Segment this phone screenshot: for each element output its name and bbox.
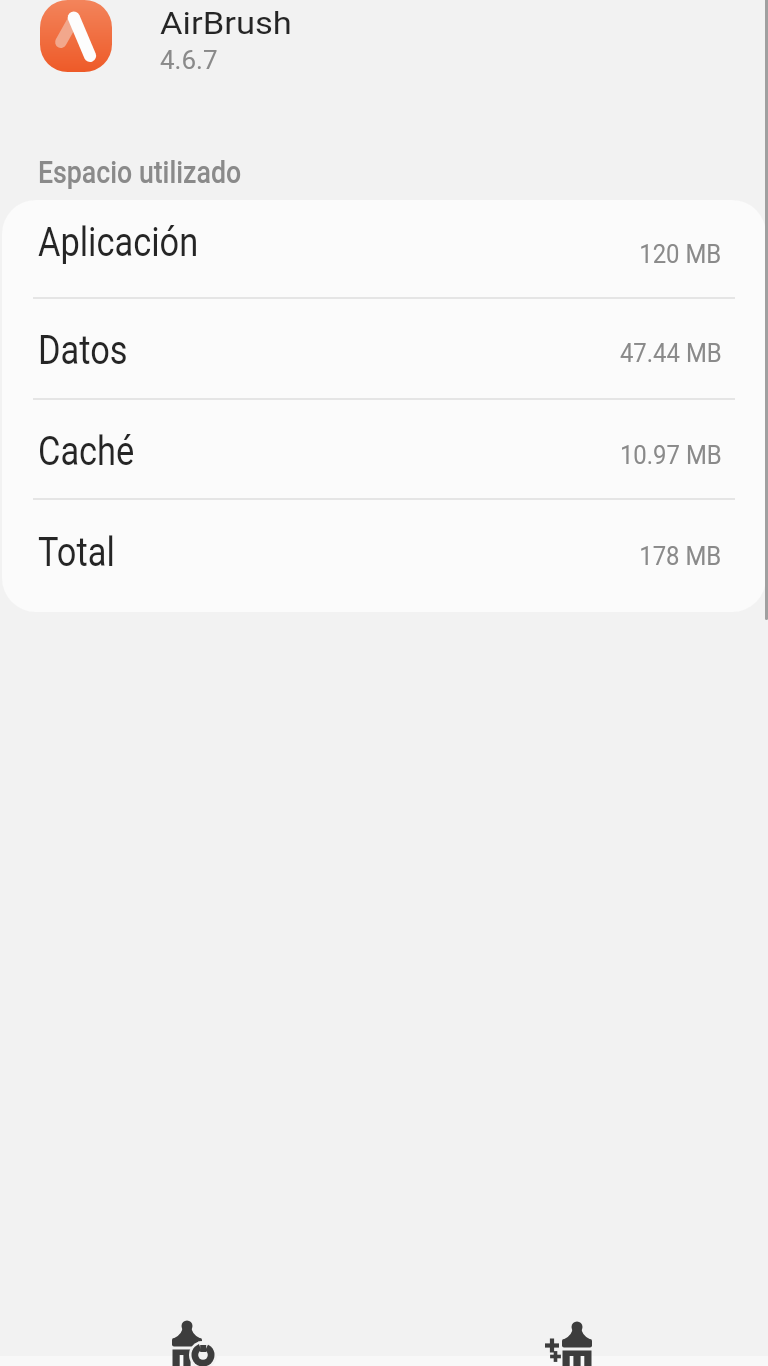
staticText: AirBrush	[160, 4, 293, 42]
staticText: 178 MB	[639, 541, 722, 571]
button[interactable]	[404, 1300, 748, 1366]
staticText: 4.6.7	[160, 45, 218, 75]
staticText: 47.44 MB	[620, 338, 722, 368]
staticText: Total	[38, 529, 115, 576]
button[interactable]	[20, 1300, 364, 1366]
staticText: 120 MB	[639, 239, 722, 269]
staticText: 10.97 MB	[620, 440, 722, 470]
staticText: Espacio utilizado	[38, 154, 242, 190]
staticText: Aplicación	[38, 219, 199, 266]
staticText: Caché	[38, 428, 134, 475]
staticText: Datos	[38, 327, 128, 374]
